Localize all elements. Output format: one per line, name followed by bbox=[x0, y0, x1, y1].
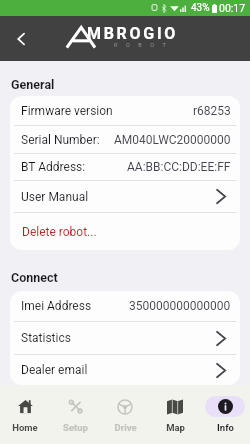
button[interactable]: Imei Address bbox=[10, 291, 240, 321]
button[interactable]: User Manual bbox=[10, 181, 240, 212]
staticText: Dealer email bbox=[21, 363, 88, 377]
button[interactable]: Info bbox=[200, 396, 250, 433]
staticText: Drive bbox=[114, 422, 137, 433]
button[interactable]: Firmware version bbox=[10, 96, 240, 125]
staticText: Imei Address bbox=[21, 299, 92, 313]
button[interactable]: Map bbox=[150, 396, 200, 433]
staticText: AM040LWC20000000 bbox=[114, 133, 231, 147]
staticText: Home bbox=[12, 422, 38, 433]
staticText: MBROGIO bbox=[87, 24, 179, 43]
staticText: Statistics bbox=[21, 331, 71, 345]
staticText: r68253 bbox=[193, 104, 231, 118]
button[interactable]: Delete robot... bbox=[10, 213, 240, 250]
button[interactable]: Drive bbox=[100, 396, 150, 433]
staticText: AA:BB:CC:DD:EE:FF bbox=[127, 160, 231, 174]
button[interactable]: BT Address: bbox=[10, 154, 240, 180]
button[interactable]: Back bbox=[6, 24, 36, 54]
button[interactable]: Serial Number: bbox=[10, 126, 240, 153]
staticText: Info bbox=[217, 422, 234, 433]
staticText: 43% bbox=[191, 2, 210, 14]
staticText: Setup bbox=[63, 422, 88, 433]
button[interactable]: Dealer email bbox=[10, 355, 240, 385]
button[interactable]: Setup bbox=[50, 396, 100, 433]
staticText: Firmware version bbox=[21, 104, 113, 118]
staticText: R O B O T bbox=[114, 42, 170, 47]
staticText: User Manual bbox=[21, 190, 89, 204]
button[interactable]: Statistics bbox=[10, 322, 240, 354]
button[interactable]: Home bbox=[0, 396, 50, 433]
staticText: Delete robot... bbox=[22, 225, 97, 239]
staticText: 350000000000000 bbox=[129, 299, 231, 313]
staticText: Map bbox=[166, 422, 185, 433]
staticText: Connect bbox=[11, 270, 58, 285]
staticText: BT Address: bbox=[21, 160, 86, 174]
staticText: Serial Number: bbox=[21, 133, 100, 147]
staticText: 00:17 bbox=[219, 2, 246, 14]
staticText: General bbox=[11, 77, 55, 92]
